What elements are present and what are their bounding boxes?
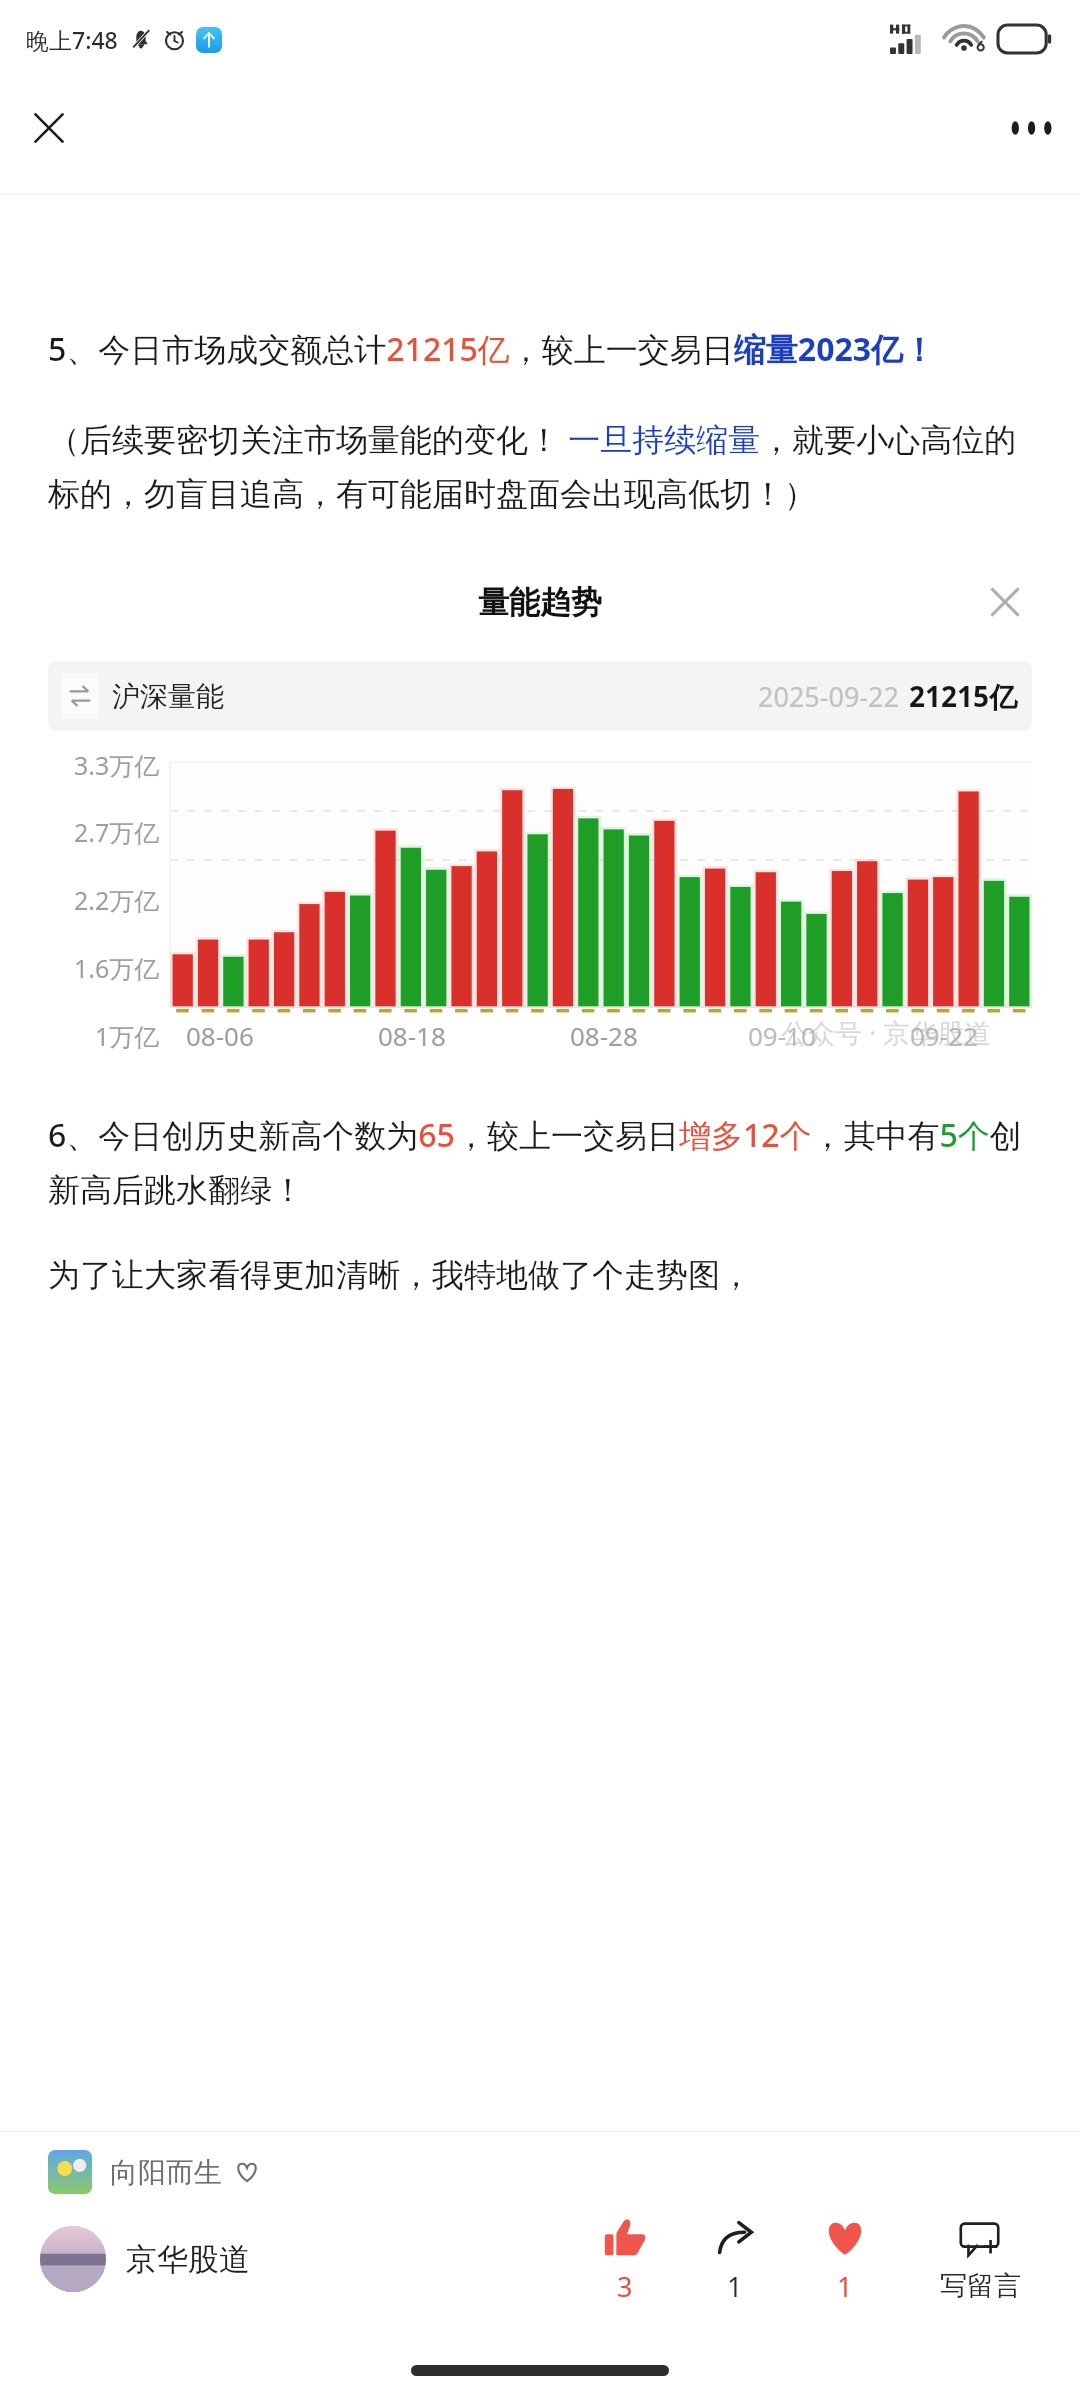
button[interactable]: 京华股道	[40, 2226, 250, 2292]
staticText: 3	[617, 2268, 633, 2305]
staticText: 2025-09-22	[758, 678, 899, 715]
staticText: 2.2万亿	[74, 883, 160, 917]
staticText: 1	[727, 2268, 743, 2305]
button[interactable]: 沪深量能	[62, 673, 1018, 719]
button[interactable]: More options	[1000, 97, 1062, 159]
staticText: 公众号 · 京华股道	[781, 1014, 992, 1051]
staticText: 08-18	[378, 1018, 446, 1053]
staticText: 09-22	[910, 1018, 978, 1053]
staticText: 2.7万亿	[74, 815, 160, 849]
button[interactable]: 写留言	[920, 2215, 1040, 2303]
staticText: 写留言	[940, 2269, 1021, 2303]
staticText: 京华股道	[126, 2240, 250, 2279]
button[interactable]: Close chart	[978, 575, 1032, 629]
staticText: （后续要密切关注市场量能的变化！ 一旦持续缩量，就要小心高位的标的，勿盲目追高，…	[48, 417, 1032, 515]
staticText: 量能趋势	[478, 583, 602, 622]
button[interactable]: 1	[700, 2214, 770, 2305]
staticText: 08-28	[570, 1018, 638, 1053]
staticText: 3.3万亿	[74, 748, 160, 782]
staticText: 6、今日创历史新高个数为65，较上一交易日增多12个，其中有5个创新高后跳水翻绿…	[48, 1113, 1032, 1211]
staticText: 1万亿	[95, 1019, 160, 1053]
staticText: 向阳而生	[110, 2155, 222, 2190]
staticText: 09-10	[748, 1018, 816, 1053]
staticText: 1.6万亿	[74, 951, 160, 985]
button[interactable]: 3	[590, 2214, 660, 2305]
staticText: 08-06	[186, 1018, 254, 1053]
button[interactable]: 向阳而生	[48, 2150, 1080, 2194]
button[interactable]: 1	[810, 2214, 880, 2305]
staticText: 21215亿	[909, 677, 1018, 715]
button[interactable]: Close	[18, 97, 80, 159]
staticText: 5、今日市场成交额总计21215亿，较上一交易日缩量2023亿！	[48, 327, 936, 371]
staticText: 沪深量能	[112, 679, 224, 714]
staticText: 1	[837, 2268, 853, 2305]
staticText: 晚上7:48	[26, 24, 118, 55]
staticText: 为了让大家看得更加清晰，我特地做了个走势图，	[48, 1255, 752, 1295]
